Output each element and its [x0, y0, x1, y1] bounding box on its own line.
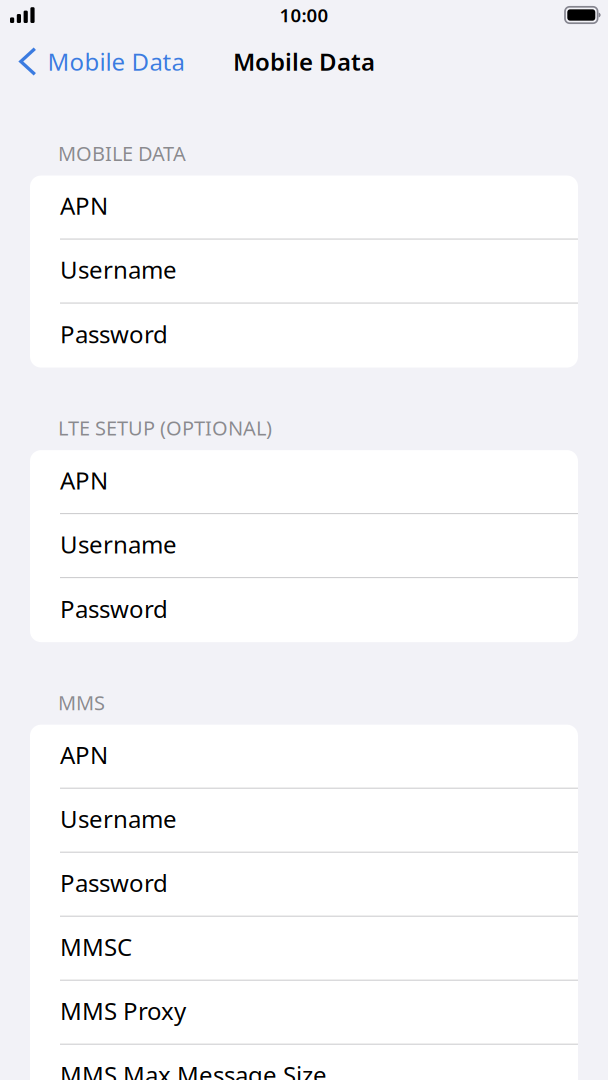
staticText: LTE SETUP (OPTIONAL) — [58, 415, 272, 441]
staticText: MOBILE DATA — [58, 140, 186, 167]
staticText: APN — [60, 739, 108, 771]
button[interactable]: Password — [30, 578, 578, 642]
button[interactable]: MMS Proxy — [30, 981, 578, 1045]
staticText: Mobile Data — [233, 46, 375, 77]
staticText: Username — [60, 254, 177, 285]
button[interactable]: Mobile Data — [0, 39, 199, 83]
staticText: APN — [60, 464, 108, 496]
button[interactable]: MMS Max Message Size — [30, 1045, 578, 1080]
staticText: Username — [60, 803, 177, 835]
staticText: Password — [60, 867, 168, 899]
staticText: 10:00 — [279, 3, 328, 27]
staticText: Username — [60, 528, 177, 560]
button[interactable]: APN — [30, 725, 578, 789]
staticText: MMSC — [60, 931, 132, 963]
button[interactable]: APN — [30, 450, 578, 514]
staticText: Password — [60, 593, 168, 625]
button[interactable]: Username — [30, 240, 578, 304]
button[interactable]: Username — [30, 789, 578, 853]
button[interactable]: Password — [30, 304, 578, 368]
staticText: Mobile Data — [48, 46, 185, 77]
button[interactable]: Password — [30, 853, 578, 917]
staticText: MMS Max Message Size — [60, 1059, 327, 1080]
button[interactable]: MMSC — [30, 917, 578, 981]
button[interactable]: APN — [30, 176, 578, 240]
staticText: MMS Proxy — [60, 995, 186, 1027]
staticText: Password — [60, 318, 168, 350]
staticText: APN — [60, 190, 108, 221]
button[interactable]: Username — [30, 514, 578, 578]
staticText: MMS — [58, 689, 105, 716]
